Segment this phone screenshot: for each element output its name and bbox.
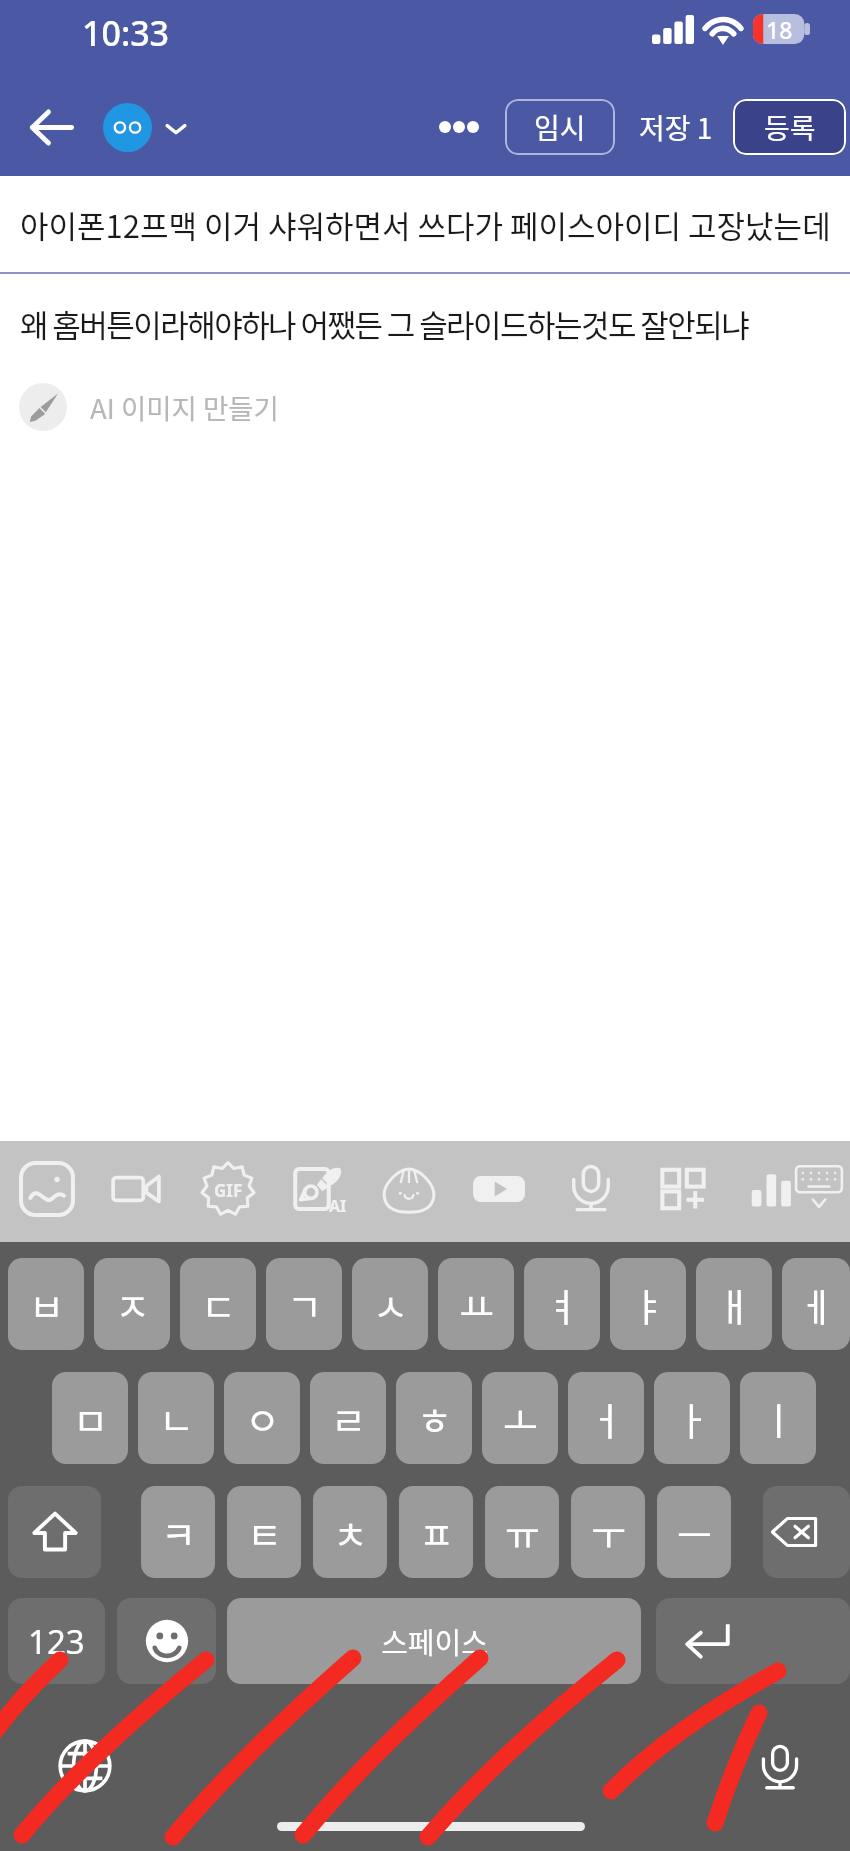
- button[interactable]: 임시: [505, 99, 615, 155]
- staticText: AI: [329, 1195, 347, 1217]
- staticText: ㅛ: [459, 1277, 494, 1332]
- staticText: ㅍ: [419, 1505, 454, 1560]
- button[interactable]: 저장 1: [639, 107, 713, 148]
- button[interactable]: ㅛ: [438, 1258, 514, 1350]
- button[interactable]: GIF: [195, 1156, 261, 1222]
- staticText: ㅈ: [115, 1277, 150, 1332]
- button[interactable]: 123: [8, 1598, 105, 1684]
- button[interactable]: ㅈ: [94, 1258, 170, 1350]
- staticText: ㅏ: [675, 1391, 710, 1446]
- button[interactable]: 아이폰12프맥 이거 샤워하면서 쓰다가 페이스아이디 고장났는데: [20, 202, 831, 247]
- button[interactable]: More options: [427, 98, 491, 156]
- button[interactable]: ㅔ: [782, 1258, 850, 1350]
- staticText: 스페이스: [381, 1620, 488, 1662]
- staticText: ㅜ: [591, 1505, 626, 1560]
- button[interactable]: ㅣ: [740, 1372, 816, 1464]
- button[interactable]: ㄴ: [138, 1372, 214, 1464]
- staticText: ㅊ: [333, 1505, 368, 1560]
- button[interactable]: 등록: [733, 99, 846, 155]
- button[interactable]: ㅑ: [610, 1258, 686, 1350]
- staticText: 등록: [764, 107, 816, 148]
- staticText: 123: [28, 1619, 85, 1664]
- staticText: ㅗ: [503, 1391, 538, 1446]
- staticText: ㅡ: [677, 1505, 712, 1560]
- button[interactable]: Backspace: [763, 1486, 850, 1578]
- staticText: ㅂ: [29, 1277, 64, 1332]
- staticText: GIF: [214, 1179, 243, 1202]
- staticText: ㅣ: [761, 1391, 796, 1446]
- button[interactable]: Back: [20, 96, 82, 158]
- staticText: ㅎ: [417, 1391, 452, 1446]
- button[interactable]: Hide keyboard: [788, 1153, 850, 1219]
- staticText: 18: [766, 14, 793, 44]
- button[interactable]: ㅎ: [396, 1372, 472, 1464]
- button[interactable]: Emoji: [117, 1598, 216, 1684]
- button[interactable]: ㅜ: [571, 1486, 645, 1578]
- button[interactable]: ㅓ: [568, 1372, 644, 1464]
- button[interactable]: ㄹ: [310, 1372, 386, 1464]
- staticText: ㅇ: [245, 1391, 280, 1446]
- button[interactable]: ㅅ: [352, 1258, 428, 1350]
- button[interactable]: Sticker: [376, 1156, 442, 1222]
- button[interactable]: ㅍ: [399, 1486, 473, 1578]
- staticText: ㅋ: [161, 1505, 196, 1560]
- button[interactable]: YouTube: [466, 1156, 532, 1222]
- staticText: ㅕ: [545, 1277, 580, 1332]
- button[interactable]: Video: [103, 1156, 169, 1222]
- button[interactable]: ㅁ: [52, 1372, 128, 1464]
- staticText: ㅅ: [373, 1277, 408, 1332]
- button[interactable]: ㅌ: [227, 1486, 301, 1578]
- button[interactable]: ㅗ: [482, 1372, 558, 1464]
- staticText: ㅠ: [505, 1505, 540, 1560]
- button[interactable]: ㄷ: [180, 1258, 256, 1350]
- button[interactable]: ㅋ: [141, 1486, 215, 1578]
- button[interactable]: ㄱ: [266, 1258, 342, 1350]
- staticText: ㄴ: [159, 1391, 194, 1446]
- button[interactable]: ㅊ: [313, 1486, 387, 1578]
- staticText: AI 이미지 만들기: [90, 387, 279, 427]
- button[interactable]: AI drawing: [286, 1156, 352, 1222]
- staticText: ㅓ: [589, 1391, 624, 1446]
- button[interactable]: Change language: [56, 1737, 114, 1795]
- button[interactable]: Enter: [656, 1598, 850, 1684]
- button[interactable]: Voice input: [751, 1739, 809, 1797]
- staticText: ㅔ: [799, 1277, 834, 1332]
- staticText: 10:33: [82, 10, 170, 56]
- staticText: ㄱ: [287, 1277, 322, 1332]
- button[interactable]: QR code: [650, 1156, 716, 1222]
- staticText: ㅑ: [631, 1277, 666, 1332]
- button[interactable]: Select account: [103, 103, 196, 152]
- button[interactable]: ㅕ: [524, 1258, 600, 1350]
- button[interactable]: ㅇ: [224, 1372, 300, 1464]
- staticText: ㄷ: [201, 1277, 236, 1332]
- button[interactable]: 스페이스: [227, 1598, 641, 1684]
- button[interactable]: Photo: [14, 1156, 80, 1222]
- button[interactable]: ㅐ: [696, 1258, 772, 1350]
- staticText: 임시: [534, 107, 586, 148]
- button[interactable]: AI 이미지 만들기: [19, 383, 279, 431]
- button[interactable]: ㅡ: [657, 1486, 731, 1578]
- button[interactable]: ㅏ: [654, 1372, 730, 1464]
- button[interactable]: ㅂ: [8, 1258, 84, 1350]
- staticText: ㅁ: [73, 1391, 108, 1446]
- button[interactable]: Voice recording: [558, 1156, 624, 1222]
- button[interactable]: Shift: [8, 1486, 101, 1578]
- staticText: ㄹ: [331, 1391, 366, 1446]
- button[interactable]: 왜 홈버튼이라해야하나 어쨌든 그 슬라이드하는것도 잘안되냐: [20, 301, 749, 346]
- button[interactable]: ㅠ: [485, 1486, 559, 1578]
- button[interactable]: Poll: [739, 1157, 805, 1223]
- staticText: ㅌ: [247, 1505, 282, 1560]
- staticText: ㅐ: [717, 1277, 752, 1332]
